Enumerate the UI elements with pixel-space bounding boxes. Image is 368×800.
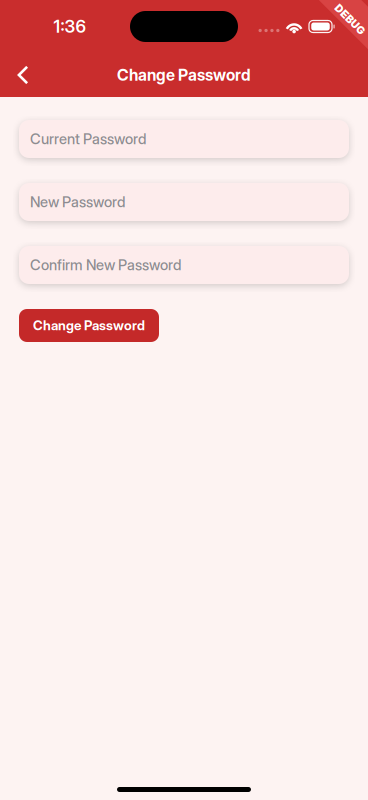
- staticText: New Password: [30, 193, 125, 211]
- staticText: Current Password: [30, 130, 146, 148]
- staticText: Change Password: [117, 65, 251, 85]
- staticText: 1:36: [53, 16, 86, 37]
- staticText: Change Password: [33, 317, 145, 333]
- button[interactable]: Back: [0, 53, 46, 97]
- staticText: Confirm New Password: [30, 256, 181, 274]
- staticText: DEBUG: [331, 13, 368, 26]
- button[interactable]: Change Password: [19, 309, 159, 342]
